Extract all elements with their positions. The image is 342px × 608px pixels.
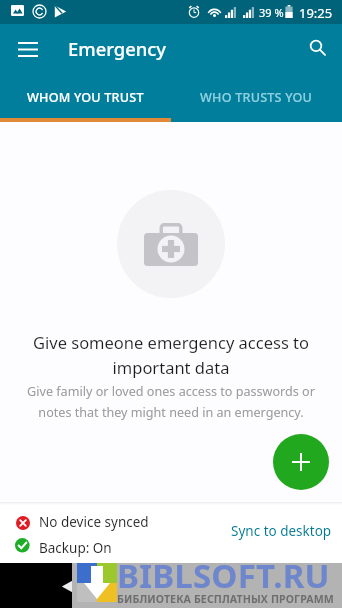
- button[interactable]: Back: [45, 564, 91, 608]
- staticText: BIBLSOFT.RU: [117, 553, 330, 598]
- staticText: Give someone emergency access to importa…: [16, 331, 326, 379]
- button[interactable]: Open navigation menu: [6, 27, 50, 71]
- button[interactable]: Sync to desktop: [231, 522, 332, 540]
- staticText: Emergency: [68, 36, 167, 61]
- staticText: 19:25: [299, 4, 333, 22]
- staticText: Sync to desktop: [231, 522, 332, 540]
- button[interactable]: WHOM YOU TRUST: [0, 73, 171, 122]
- staticText: Give family or loved ones access to pass…: [12, 383, 330, 421]
- button[interactable]: Home: [148, 565, 192, 608]
- staticText: Backup: On: [39, 539, 112, 557]
- button[interactable]: WHO TRUSTS YOU: [171, 73, 342, 122]
- staticText: БИБЛИОТЕКА БЕСПЛАТНЫХ ПРОГРАММ: [117, 592, 334, 606]
- staticText: 39 %: [259, 5, 284, 20]
- button[interactable]: Add trusted contact: [273, 434, 329, 490]
- staticText: WHO TRUSTS YOU: [200, 89, 313, 106]
- staticText: WHOM YOU TRUST: [27, 89, 144, 106]
- button[interactable]: Recent apps: [241, 565, 285, 608]
- button[interactable]: Search: [297, 27, 341, 71]
- staticText: No device synced: [39, 513, 149, 531]
